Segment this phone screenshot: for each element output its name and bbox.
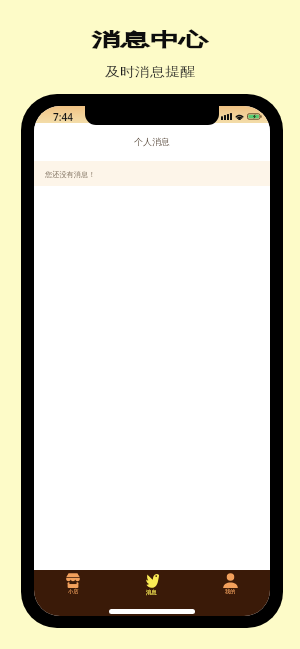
staticText: 我的 xyxy=(225,588,236,595)
button[interactable]: Profile xyxy=(191,573,270,601)
staticText: 及时消息提醒 xyxy=(105,65,195,80)
staticText: 消息中心 xyxy=(92,29,208,52)
staticText: 小店 xyxy=(68,588,79,595)
staticText: 消息 xyxy=(146,589,157,596)
staticText: 7:44 xyxy=(53,110,73,124)
button[interactable]: Messages xyxy=(112,573,191,601)
staticText: 您还没有消息！ xyxy=(45,170,96,179)
button[interactable]: Shop xyxy=(34,573,112,601)
staticText: 个人消息 xyxy=(134,136,170,147)
